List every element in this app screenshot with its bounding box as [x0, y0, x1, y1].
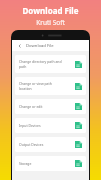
staticText: Change or view path: [19, 81, 52, 86]
staticText: Download File: [26, 43, 54, 49]
staticText: path: [19, 64, 27, 69]
button[interactable]: Change directory path and: [15, 55, 86, 73]
staticText: Change directory path and: [19, 59, 62, 64]
staticText: Kruti Soft: [0, 18, 101, 27]
staticText: Storage: [19, 161, 32, 166]
button[interactable]: Output Devices: [15, 137, 86, 152]
button[interactable]: Change or view path: [15, 77, 86, 95]
staticText: Output Devices: [19, 142, 44, 147]
staticText: location: [19, 86, 32, 91]
button[interactable]: Back: [16, 42, 23, 49]
staticText: Input Devices: [19, 123, 41, 128]
staticText: Change or edit: [19, 104, 43, 109]
button[interactable]: Change or edit: [15, 99, 86, 114]
button[interactable]: Storage: [15, 156, 86, 171]
button[interactable]: Input Devices: [15, 118, 86, 133]
staticText: Download File: [0, 5, 101, 16]
